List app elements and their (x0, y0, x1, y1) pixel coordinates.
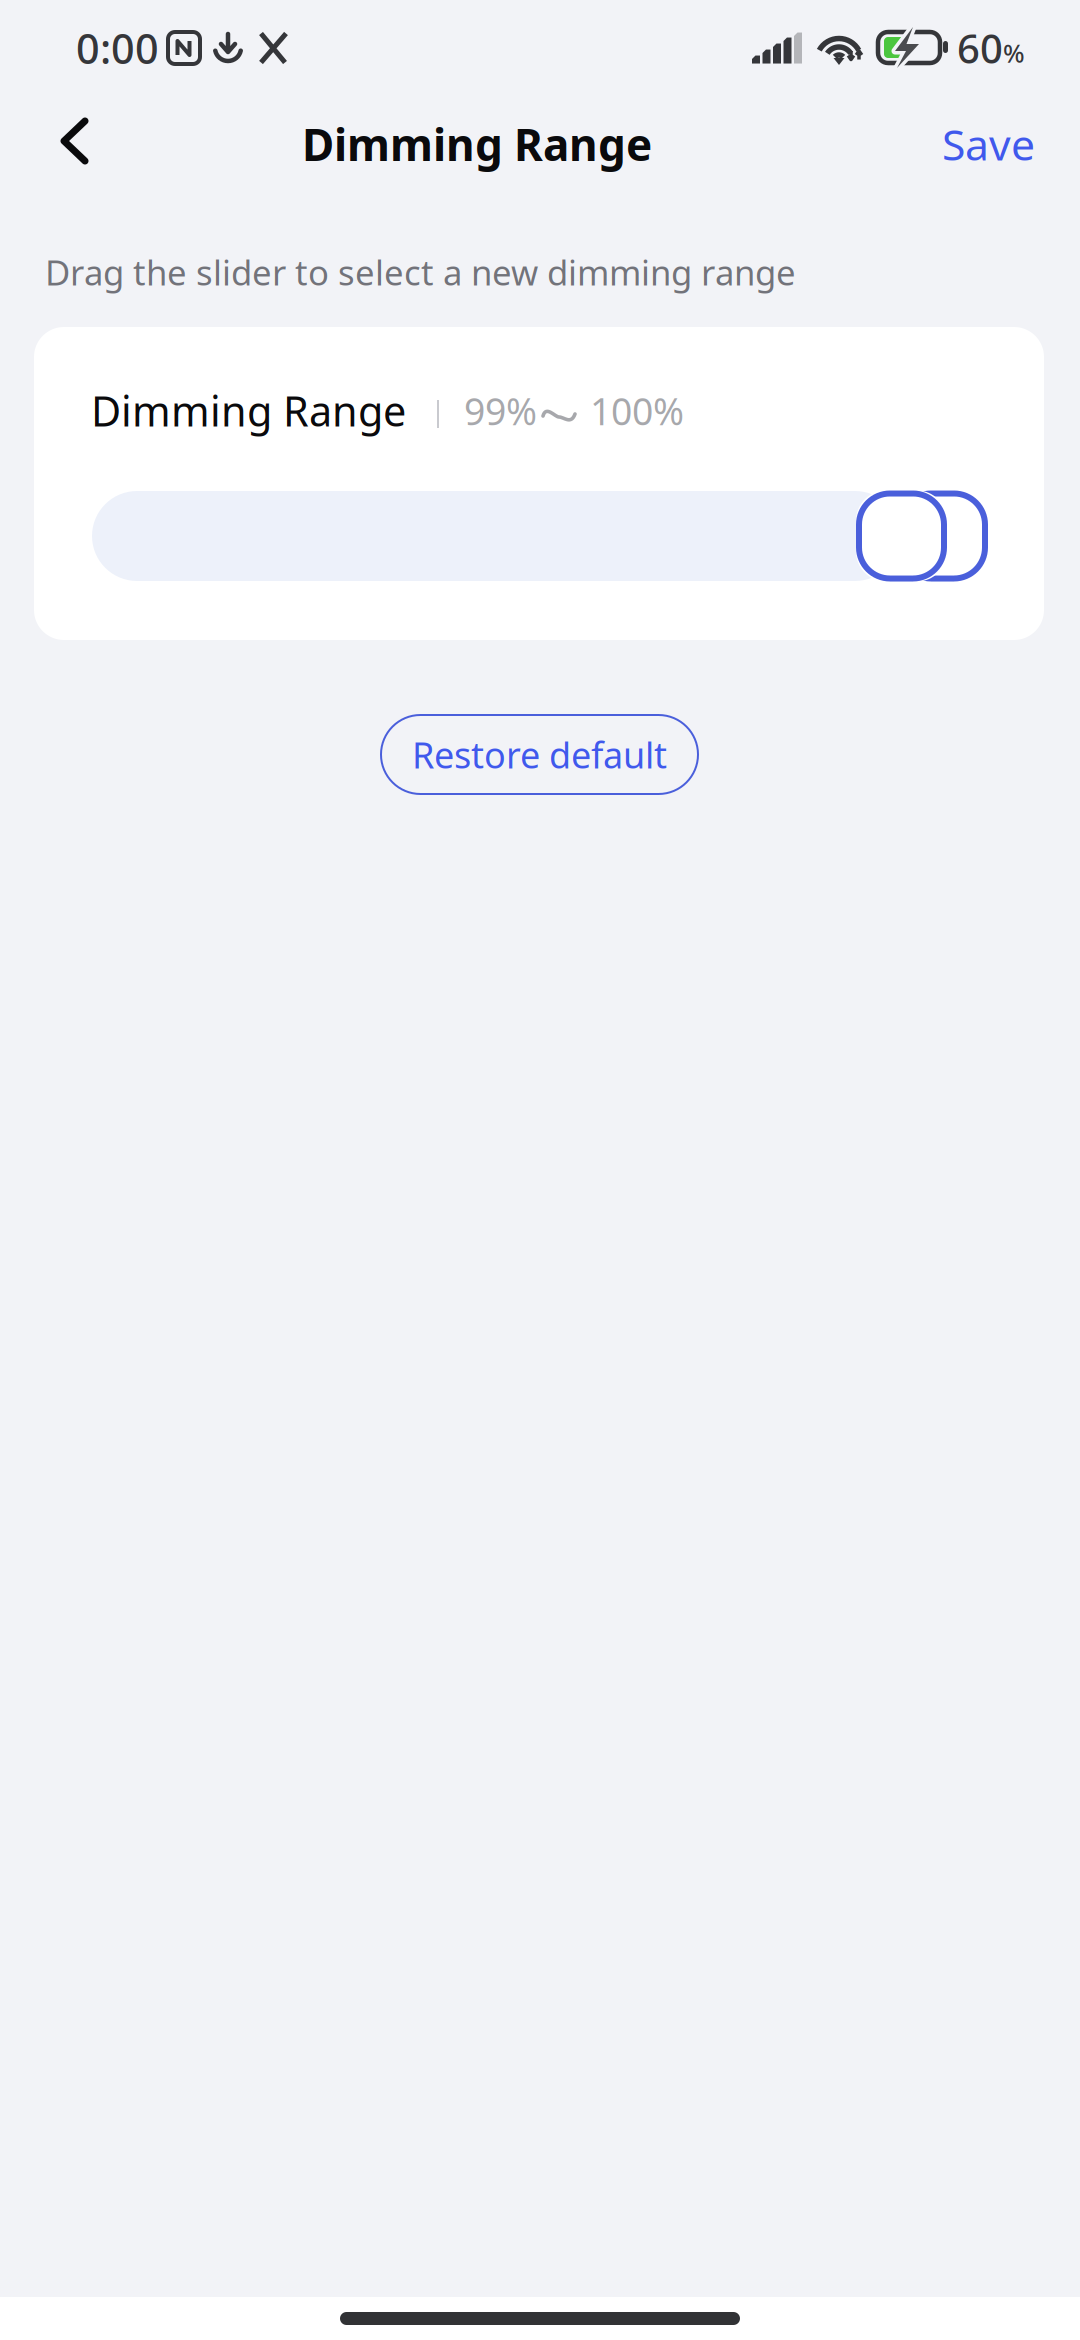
staticText: Drag the slider to select a new dimming … (45, 249, 796, 295)
staticText: Restore default (412, 731, 667, 778)
staticText: 0:00 (76, 21, 159, 75)
staticText: Save (942, 116, 1035, 172)
staticText: % (1003, 36, 1025, 70)
staticText: 100% (590, 386, 684, 436)
button[interactable]: Back (20, 99, 119, 189)
button[interactable]: Save (921, 94, 1056, 194)
button[interactable]: Restore default (380, 714, 699, 795)
staticText: 60 (957, 21, 1003, 74)
staticText: Dimming Range (91, 383, 406, 438)
staticText: 99% (464, 386, 537, 436)
staticText: Dimming Range (302, 115, 652, 173)
